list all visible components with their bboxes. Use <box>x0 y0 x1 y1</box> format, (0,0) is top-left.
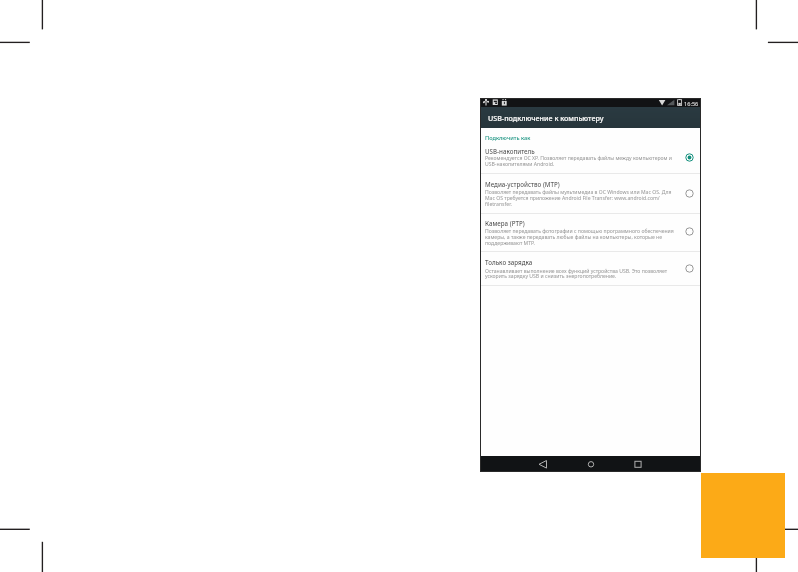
staticText: Останавливает выполнение всех функций ус… <box>485 268 668 275</box>
staticText: USB-подключение к компьютеру <box>488 113 604 123</box>
staticText: USB-накопителями Android. <box>485 161 555 168</box>
button[interactable]: Только зарядка <box>480 251 701 284</box>
staticText: Рекомендуется ОС XP. Позволяет передават… <box>485 155 673 162</box>
button[interactable]: USB-накопитель <box>480 142 701 173</box>
staticText: Камера (PTP) <box>485 219 525 227</box>
button[interactable]: Back <box>529 456 557 472</box>
staticText: Медиа-устройство (MTP) <box>485 180 560 188</box>
button[interactable]: Камера (PTP) <box>480 213 701 251</box>
staticText: камеры, а также передавать любые файлы н… <box>485 234 663 241</box>
staticText: USB-накопитель <box>485 147 535 155</box>
staticText: Подключить как <box>485 134 531 142</box>
staticText: Mac OS требуется приложение Android File… <box>485 195 660 202</box>
button[interactable]: Home <box>577 456 605 472</box>
staticText: 16:56 <box>684 100 699 108</box>
button[interactable]: Recent apps <box>624 456 652 472</box>
staticText: поддерживают MTP. <box>485 240 535 247</box>
staticText: filetransfer. <box>485 201 512 208</box>
staticText: Позволяет передавать фотографии с помощь… <box>485 228 674 235</box>
staticText: Позволяет передавать файлы мультимедиа в… <box>485 189 672 196</box>
button[interactable]: Медиа-устройство (MTP) <box>480 173 701 213</box>
staticText: Только зарядка <box>485 258 533 266</box>
staticText: ускорить зарядку USB и снизить энергопот… <box>485 273 617 280</box>
